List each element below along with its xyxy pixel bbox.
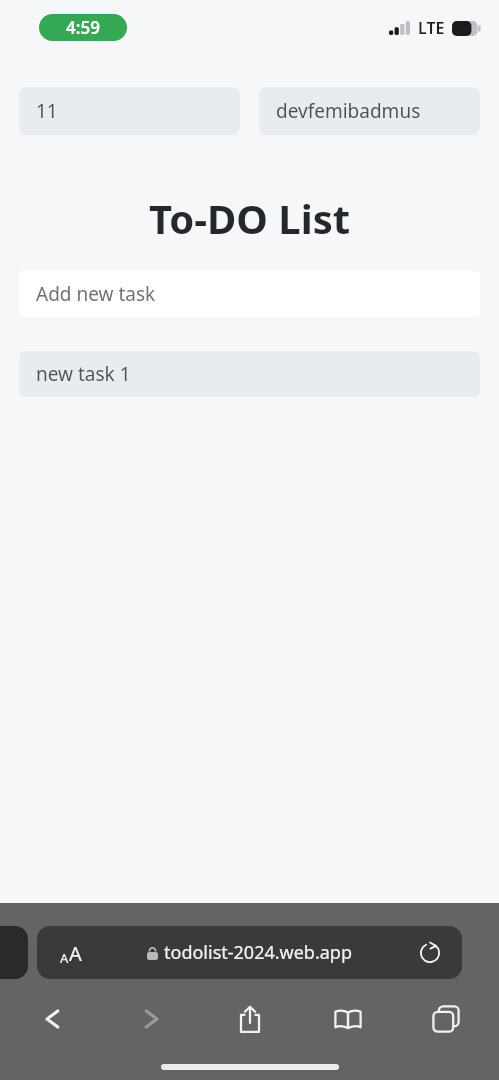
staticText: A bbox=[60, 949, 69, 967]
button[interactable]: Back bbox=[22, 993, 84, 1045]
staticText: 11 bbox=[36, 98, 58, 124]
staticText: new task 1 bbox=[36, 361, 131, 387]
button[interactable]: Text size bbox=[47, 931, 95, 975]
button[interactable]: devfemibadmus bbox=[259, 87, 480, 135]
staticText: 4:59 bbox=[66, 16, 100, 39]
button[interactable]: new task 1 bbox=[19, 351, 480, 397]
staticText: To-DO List bbox=[0, 191, 499, 245]
button[interactable]: Share bbox=[219, 993, 281, 1045]
staticText: Add new task bbox=[36, 281, 156, 307]
button[interactable]: Previous tab bbox=[0, 926, 28, 979]
staticText: devfemibadmus bbox=[276, 98, 421, 124]
button[interactable]: Tabs bbox=[415, 993, 477, 1045]
button[interactable]: Reload bbox=[410, 933, 450, 973]
staticText: LTE bbox=[418, 17, 445, 39]
button[interactable]: Bookmarks bbox=[317, 993, 379, 1045]
staticText: todolist-2024.web.app bbox=[164, 940, 352, 965]
staticText: A bbox=[69, 940, 82, 967]
button[interactable]: 11 bbox=[19, 87, 240, 135]
button[interactable]: Text size bbox=[37, 926, 462, 979]
button[interactable]: Forward bbox=[120, 993, 182, 1045]
button[interactable]: Add new task bbox=[19, 271, 480, 317]
